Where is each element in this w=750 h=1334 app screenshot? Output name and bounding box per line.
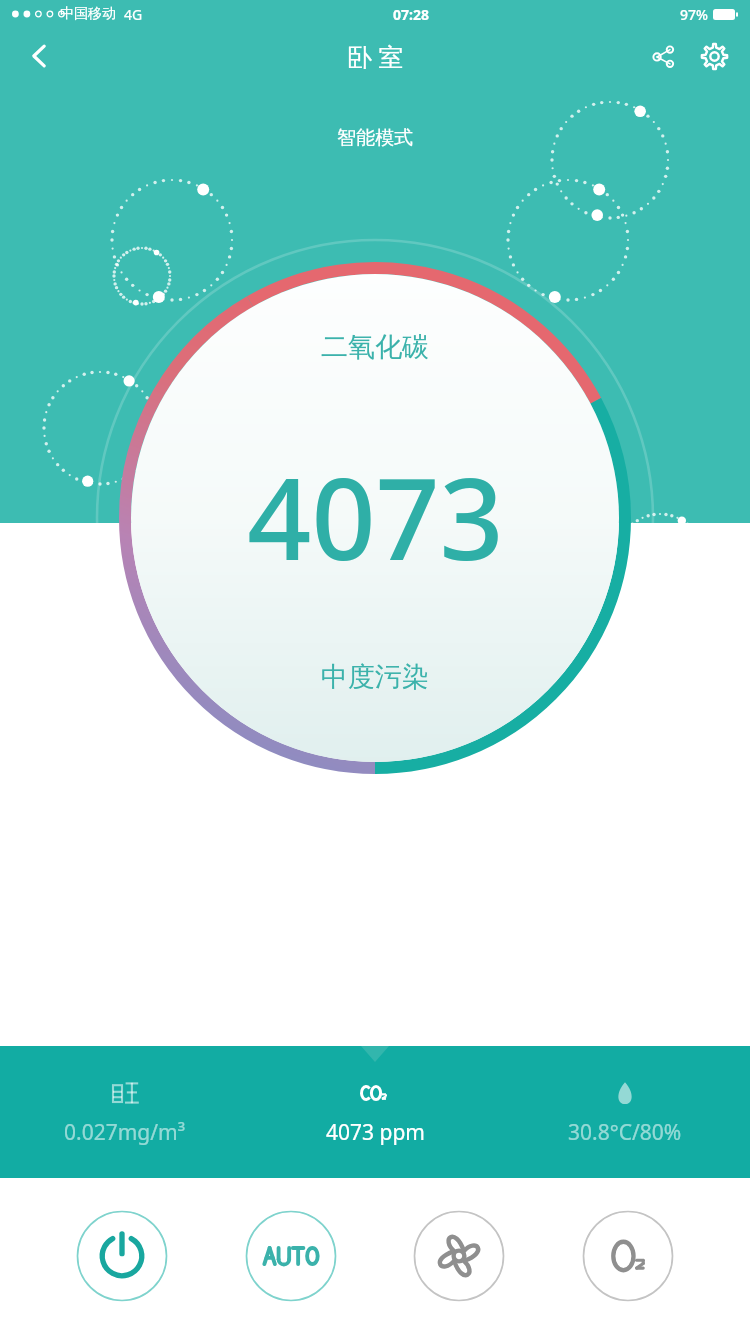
button[interactable]: Fan speed [413, 1210, 505, 1302]
staticText: 智能模式 [337, 126, 413, 150]
button[interactable]: 30.8°C/80% [500, 1046, 750, 1178]
button[interactable]: Back [10, 28, 68, 84]
staticText: 二氧化碳 [321, 330, 429, 364]
button[interactable]: Settings [688, 30, 740, 82]
staticText: 4073 [247, 440, 504, 593]
staticText: 4G [124, 5, 143, 24]
staticText: 30.8°C/80% [568, 1118, 682, 1147]
staticText: 卧 室 [347, 39, 404, 73]
staticText: 07:28 [393, 5, 429, 24]
button[interactable]: 0.027mg/m³ [0, 1046, 250, 1178]
staticText: 4073 ppm [326, 1118, 425, 1147]
staticText: 0.027mg/m³ [64, 1118, 186, 1147]
button[interactable]: Share [638, 31, 688, 81]
button[interactable]: Auto mode [245, 1210, 337, 1302]
button[interactable]: 4073 ppm [250, 1046, 500, 1178]
button[interactable]: Oxygen [582, 1210, 674, 1302]
staticText: 中国移动 [60, 5, 116, 23]
button[interactable]: Power [76, 1210, 168, 1302]
staticText: 中度污染 [321, 660, 429, 694]
staticText: 97% [680, 5, 708, 24]
